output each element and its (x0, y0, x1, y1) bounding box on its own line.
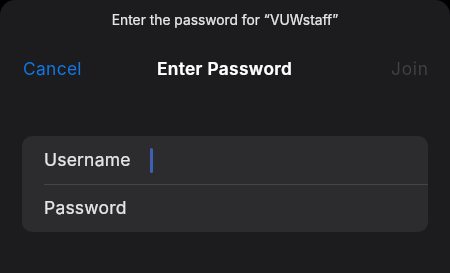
staticText: Enter the password for “VUWstaff” (0, 12, 450, 29)
button[interactable]: Password (22, 185, 428, 232)
button[interactable]: Join (370, 44, 450, 92)
staticText: Username (44, 149, 131, 170)
staticText: Cancel (23, 58, 82, 79)
staticText: Enter Password (157, 58, 293, 79)
staticText: Join (391, 58, 429, 79)
staticText: Password (44, 197, 127, 218)
button[interactable]: Cancel (0, 44, 105, 92)
button[interactable]: Username (22, 136, 428, 184)
